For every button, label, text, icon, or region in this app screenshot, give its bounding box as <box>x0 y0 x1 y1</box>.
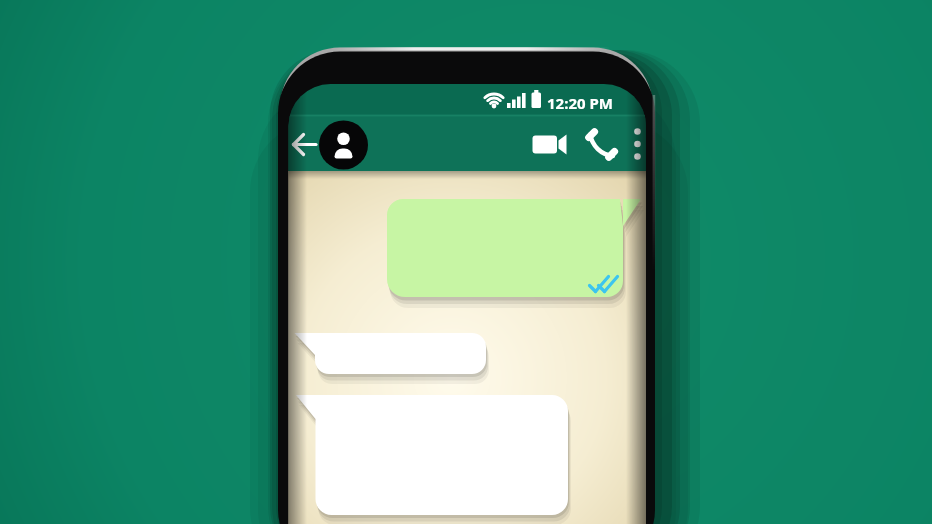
button[interactable] <box>624 123 651 167</box>
button[interactable] <box>525 127 571 162</box>
button[interactable] <box>318 120 368 170</box>
staticText: 12:20 PM <box>547 93 613 113</box>
button[interactable] <box>583 126 621 164</box>
button[interactable] <box>288 125 324 165</box>
